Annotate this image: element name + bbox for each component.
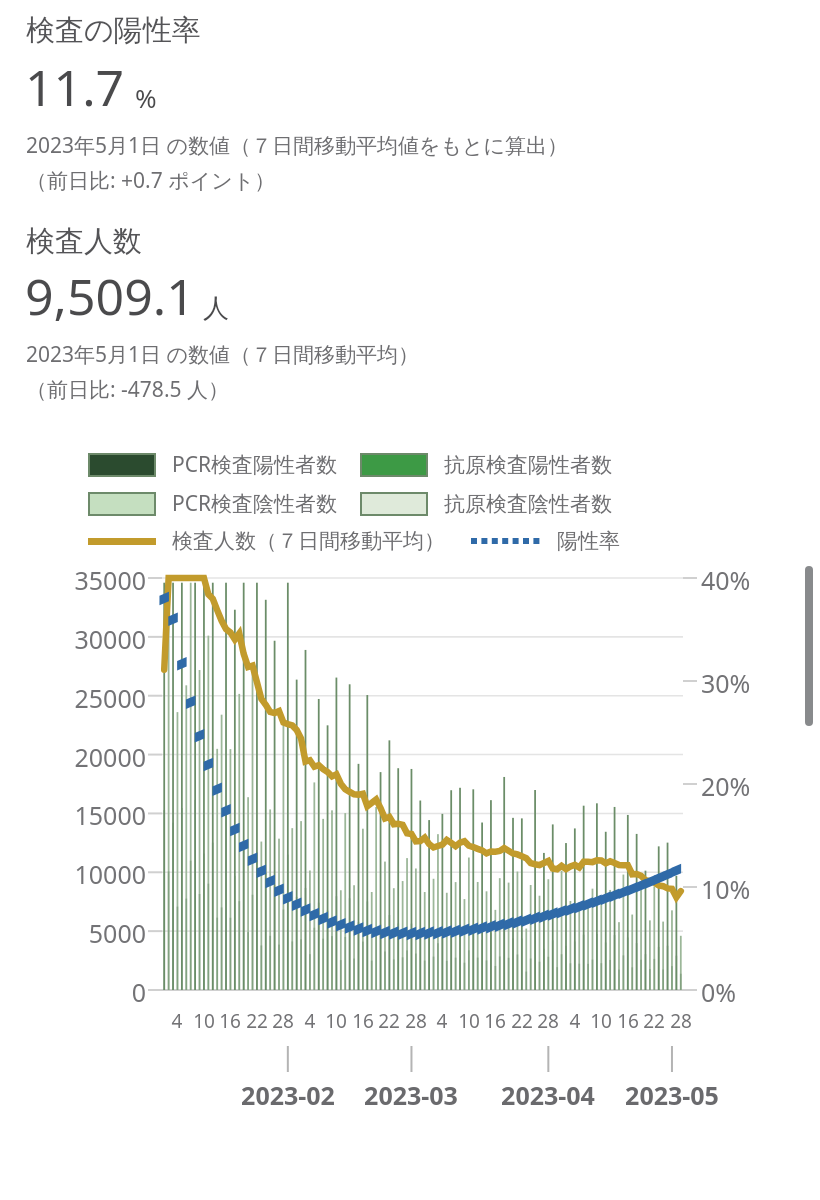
button[interactable]: 検査人数（７日間移動平均）	[0, 528, 820, 554]
staticText: 25000	[0, 681, 146, 715]
staticText: 抗原検査陽性者数	[444, 452, 612, 478]
staticText: 2023年5月1日 の数値（７日間移動平均値をもとに算出）	[26, 131, 568, 160]
staticText: 検査人数（７日間移動平均）	[172, 528, 445, 554]
staticText: 陽性率	[557, 528, 620, 554]
staticText: 28	[398, 1008, 434, 1034]
staticText: 40%	[701, 563, 751, 597]
staticText: 4	[424, 1008, 460, 1034]
staticText: 2023-05	[602, 1078, 742, 1112]
staticText: 人	[203, 292, 229, 325]
staticText: 30000	[0, 622, 146, 656]
staticText: 0	[0, 975, 146, 1009]
staticText: （前日比: +0.7 ポイント）	[26, 166, 276, 195]
staticText: 4	[557, 1008, 593, 1034]
staticText: 16	[345, 1008, 381, 1034]
staticText: （前日比: -478.5 人）	[26, 375, 229, 404]
staticText: 10	[318, 1008, 354, 1034]
staticText: 22	[636, 1008, 672, 1034]
staticText: 22	[504, 1008, 540, 1034]
staticText: 4	[292, 1008, 328, 1034]
staticText: PCR検査陽性者数	[172, 450, 338, 479]
staticText: 5000	[0, 916, 146, 950]
button[interactable]: PCR検査陰性者数	[0, 489, 820, 518]
staticText: 10	[583, 1008, 619, 1034]
staticText: 28	[265, 1008, 301, 1034]
staticText: 検査人数	[26, 223, 142, 260]
staticText: PCR検査陰性者数	[172, 489, 338, 518]
staticText: 20%	[701, 769, 751, 803]
staticText: 11.7	[25, 53, 125, 121]
staticText: 28	[663, 1008, 699, 1034]
staticText: 10000	[0, 857, 146, 891]
staticText: 検査の陽性率	[26, 12, 201, 49]
staticText: 35000	[0, 563, 146, 597]
staticText: 16	[212, 1008, 248, 1034]
staticText: 4	[159, 1008, 195, 1034]
staticText: 28	[530, 1008, 566, 1034]
staticText: 2023-02	[218, 1078, 358, 1112]
staticText: 30%	[701, 666, 751, 700]
staticText: 15000	[0, 798, 146, 832]
staticText: 10	[451, 1008, 487, 1034]
staticText: 16	[610, 1008, 646, 1034]
staticText: 10%	[701, 872, 751, 906]
staticText: 9,509.1	[25, 262, 195, 330]
staticText: 2023年5月1日 の数値（７日間移動平均）	[26, 340, 420, 369]
staticText: 0%	[701, 975, 737, 1009]
button[interactable]: PCR検査陽性者数	[0, 450, 820, 479]
staticText: 22	[371, 1008, 407, 1034]
staticText: 10	[186, 1008, 222, 1034]
staticText: 22	[239, 1008, 275, 1034]
staticText: 20000	[0, 740, 146, 774]
button[interactable]: 検査人数と陽性率の推移グラフ	[0, 566, 820, 1106]
staticText: 抗原検査陰性者数	[444, 491, 612, 517]
staticText: 2023-03	[341, 1078, 481, 1112]
staticText: 2023-04	[478, 1078, 618, 1112]
staticText: %	[135, 80, 157, 115]
staticText: 16	[477, 1008, 513, 1034]
